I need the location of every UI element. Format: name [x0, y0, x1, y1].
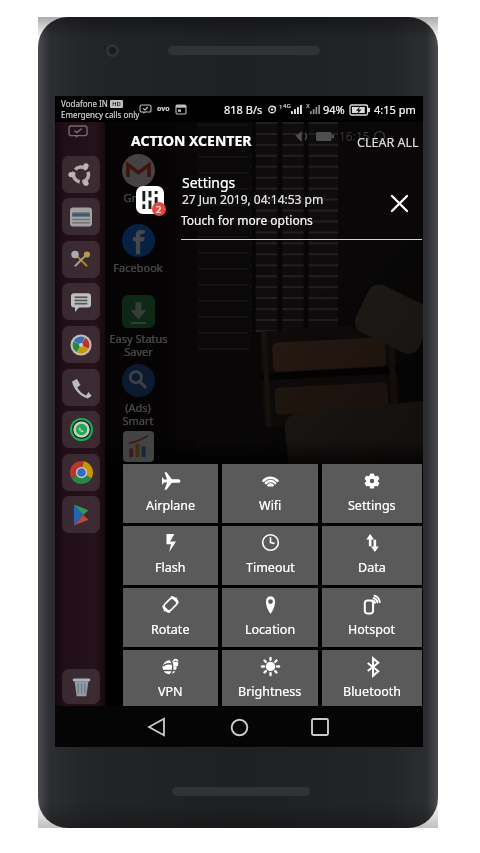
- button[interactable]: Flash: [123, 526, 218, 585]
- staticText: Bluetooth: [343, 683, 402, 700]
- staticText: HD: [112, 100, 121, 108]
- button[interactable]: [62, 411, 100, 448]
- button[interactable]: [62, 669, 100, 704]
- button[interactable]: Recents: [289, 708, 351, 746]
- staticText: Settings: [348, 497, 396, 514]
- staticText: Data: [358, 559, 386, 576]
- button[interactable]: [62, 283, 100, 320]
- staticText: Wifi: [259, 497, 282, 514]
- button[interactable]: Settings: [322, 464, 422, 523]
- button[interactable]: Timeout: [222, 526, 318, 585]
- staticText: VPN: [158, 683, 183, 700]
- staticText: 27 Jun 2019, 04:14:53 pm: [182, 191, 324, 207]
- staticText: Flash: [155, 559, 186, 576]
- staticText: 16:15: [339, 128, 370, 144]
- button[interactable]: Rotate: [123, 588, 218, 647]
- button[interactable]: Back: [125, 708, 187, 746]
- button[interactable]: Hotspot: [322, 588, 422, 647]
- button[interactable]: 2: [55, 168, 423, 240]
- staticText: 2: [156, 203, 162, 216]
- button[interactable]: [62, 454, 100, 491]
- staticText: Touch for more options: [181, 212, 313, 228]
- button[interactable]: Wifi: [222, 464, 318, 523]
- button[interactable]: VPN: [123, 650, 218, 709]
- staticText: Airplane: [146, 497, 196, 514]
- staticText: Rotate: [151, 621, 190, 638]
- button[interactable]: Brightness: [222, 650, 318, 709]
- staticText: 818 B/s: [224, 102, 263, 117]
- staticText: Emergency calls only: [61, 109, 140, 120]
- staticText: Easy Status Saver: [109, 331, 168, 359]
- staticText: ACTION XCENTER: [131, 131, 252, 150]
- staticText: 1: [279, 103, 283, 111]
- staticText: 94%: [323, 102, 345, 117]
- staticText: (Ads) Smart: [122, 400, 154, 428]
- button[interactable]: Home: [208, 708, 270, 746]
- staticText: Facebook: [113, 260, 163, 275]
- button[interactable]: Facebook: [105, 224, 171, 275]
- button[interactable]: Gmail: [105, 154, 171, 205]
- button[interactable]: CLEAR ALL: [351, 129, 423, 156]
- staticText: 4:15 pm: [374, 102, 416, 117]
- button[interactable]: Dismiss: [386, 190, 412, 216]
- staticText: CLEAR ALL: [357, 134, 419, 151]
- button[interactable]: [62, 326, 100, 363]
- button[interactable]: [62, 369, 100, 406]
- button[interactable]: [62, 156, 100, 193]
- staticText: ovo: [157, 104, 170, 114]
- button[interactable]: [105, 430, 171, 463]
- staticText: Brightness: [238, 683, 302, 700]
- button[interactable]: Airplane: [123, 464, 218, 523]
- button[interactable]: Location: [222, 588, 318, 647]
- staticText: 4G: [283, 102, 291, 110]
- staticText: Timeout: [246, 559, 295, 576]
- staticText: Location: [245, 621, 296, 638]
- staticText: x: [306, 101, 310, 111]
- staticText: Hotspot: [348, 621, 396, 638]
- button[interactable]: Data: [322, 526, 422, 585]
- staticText: Settings: [182, 173, 236, 192]
- button[interactable]: Bluetooth: [322, 650, 422, 709]
- button[interactable]: Easy Status Saver: [105, 295, 171, 359]
- button[interactable]: [62, 496, 100, 533]
- staticText: Vodafone IN: [61, 98, 108, 109]
- button[interactable]: [62, 198, 100, 235]
- button[interactable]: (Ads) Smart: [105, 364, 171, 428]
- staticText: Gmail: [123, 190, 154, 205]
- button[interactable]: [62, 241, 100, 278]
